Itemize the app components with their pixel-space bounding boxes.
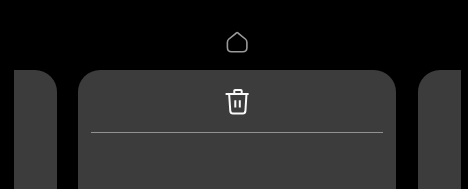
- button[interactable]: Home: [223, 27, 251, 55]
- button[interactable]: Next card: [418, 70, 461, 189]
- button[interactable]: Delete: [224, 88, 250, 114]
- button[interactable]: Previous card: [14, 70, 57, 189]
- button[interactable]: Delete: [78, 70, 396, 189]
